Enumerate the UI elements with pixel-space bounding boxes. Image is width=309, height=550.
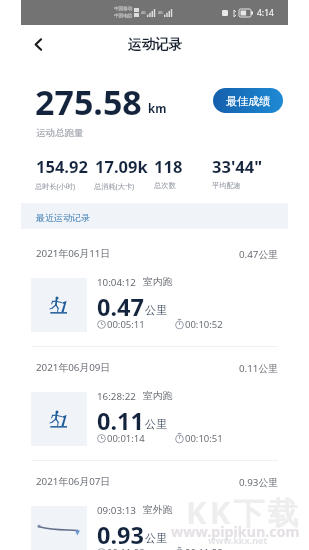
staticText: 154.92 xyxy=(36,155,88,177)
staticText: 总时长(小时) xyxy=(35,181,76,191)
staticText: 2021年06月09日 xyxy=(36,361,111,374)
button[interactable]: 2021年06月11日 xyxy=(21,232,288,346)
button[interactable]: 2021年06月07日 xyxy=(21,460,288,550)
staticText: 0.11公里 xyxy=(21,362,278,375)
staticText: www.pipikun.com xyxy=(171,522,300,541)
staticText: 最近运动记录 xyxy=(36,212,90,223)
staticText: 16:28:22 xyxy=(97,390,136,403)
staticText: 17.09k xyxy=(95,155,148,177)
staticText: 00:01:14 xyxy=(107,432,145,445)
staticText: 0.11 xyxy=(97,405,144,437)
button[interactable]: Back xyxy=(23,29,53,59)
staticText: 室外跑 xyxy=(143,504,173,516)
staticText: KK下载 xyxy=(186,491,302,533)
staticText: 00:10:52 xyxy=(185,318,223,331)
staticText: 4G xyxy=(158,10,163,15)
staticText: 室内跑 xyxy=(143,390,173,402)
staticText: www.kkx.net xyxy=(208,534,268,546)
staticText: 总消耗(大卡) xyxy=(94,181,135,191)
staticText: 中国电信 xyxy=(114,13,133,19)
staticText: 最佳成绩 xyxy=(226,94,270,108)
staticText: km xyxy=(148,101,167,117)
staticText: 平均配速 xyxy=(212,181,241,190)
staticText: 275.58 xyxy=(35,79,142,125)
staticText: 0.93公里 xyxy=(21,476,278,489)
button[interactable]: 最近运动记录 xyxy=(21,203,288,229)
button[interactable]: 最佳成绩 xyxy=(213,88,283,113)
staticText: 0.47公里 xyxy=(21,248,278,261)
staticText: 公里 xyxy=(145,531,167,545)
staticText: 00:11:58 xyxy=(185,546,223,550)
staticText: 运动记录 xyxy=(128,36,182,53)
staticText: 00:11:08 xyxy=(107,546,145,550)
staticText: 公里 xyxy=(145,303,167,317)
staticText: 00:05:11 xyxy=(107,318,145,331)
staticText: 33'44" xyxy=(212,155,263,177)
staticText: 4G xyxy=(141,10,146,15)
staticText: 10:04:12 xyxy=(97,276,136,289)
staticText: 中国移动 xyxy=(114,6,133,12)
staticText: 运动总跑量 xyxy=(36,127,84,139)
staticText: 09:03:13 xyxy=(97,504,136,517)
button[interactable]: 2021年06月09日 xyxy=(21,346,288,460)
staticText: 总次数 xyxy=(154,181,176,190)
staticText: 2021年06月07日 xyxy=(36,475,111,488)
staticText: 室内跑 xyxy=(143,276,173,288)
staticText: 2021年06月11日 xyxy=(36,247,111,260)
staticText: 公里 xyxy=(145,417,167,431)
staticText: 118 xyxy=(154,155,183,177)
staticText: 00:10:51 xyxy=(185,432,223,445)
staticText: 4:14 xyxy=(257,7,274,19)
staticText: 0.47 xyxy=(97,291,144,323)
staticText: 0.93 xyxy=(97,519,144,550)
